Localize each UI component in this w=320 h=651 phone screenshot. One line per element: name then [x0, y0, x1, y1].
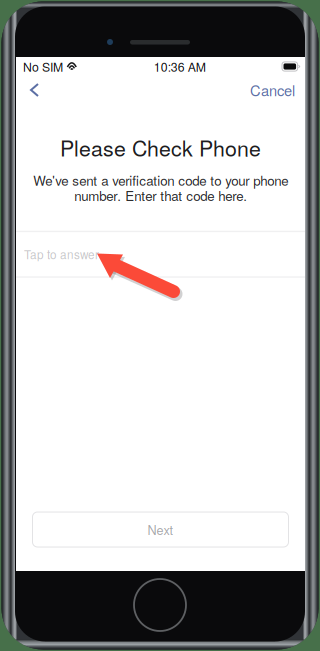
- staticText: We've sent a verification code to your p…: [33, 170, 288, 205]
- button[interactable]: Next: [32, 512, 288, 547]
- staticText: Tap to answer: [24, 246, 99, 263]
- staticText: Cancel: [250, 79, 295, 100]
- staticText: No SIM: [23, 58, 63, 75]
- button[interactable]: Back: [16, 76, 64, 104]
- staticText: Please Check Phone: [60, 132, 261, 162]
- button[interactable]: Tap to answer: [16, 232, 305, 276]
- staticText: 10:36 AM: [154, 58, 206, 75]
- staticText: Next: [147, 520, 173, 538]
- button[interactable]: Cancel: [250, 76, 305, 104]
